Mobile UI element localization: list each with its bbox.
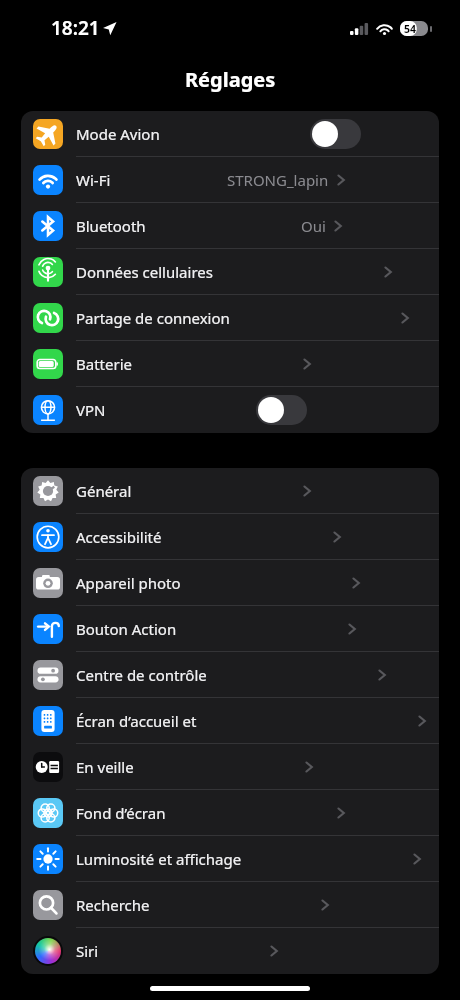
staticText: 54 <box>404 22 417 36</box>
button[interactable]: En veille <box>21 744 439 790</box>
staticText: Fond d’écran <box>76 803 166 823</box>
staticText: Siri <box>76 941 99 961</box>
button[interactable]: Données cellulaires <box>21 249 439 295</box>
button[interactable]: Bouton Action <box>21 606 439 652</box>
staticText: Accessibilité <box>76 527 162 547</box>
button[interactable]: Activer <box>256 395 307 425</box>
staticText: VPN <box>76 400 106 420</box>
button[interactable]: Centre de contrôle <box>21 652 439 698</box>
button[interactable]: Fond d’écran <box>21 790 439 836</box>
button[interactable]: Écran d’accueil et bibliothèque d’apps <box>21 698 439 744</box>
staticText: Oui <box>301 216 326 236</box>
button[interactable]: Siri <box>21 928 439 974</box>
staticText: Appareil photo <box>76 573 181 593</box>
button[interactable]: Recherche <box>21 882 439 928</box>
staticText: Données cellulaires <box>76 262 213 282</box>
staticText: Centre de contrôle <box>76 665 207 685</box>
button[interactable]: Activer <box>310 119 361 149</box>
staticText: Luminosité et affichage <box>76 849 242 869</box>
staticText: Général <box>76 481 132 501</box>
staticText: Mode Avion <box>76 124 160 144</box>
staticText: STRONG_lapin <box>227 170 329 190</box>
button[interactable]: Mode Avion <box>21 111 439 157</box>
button[interactable]: Wi-Fi <box>21 157 439 203</box>
button[interactable]: Luminosité et affichage <box>21 836 439 882</box>
staticText: Recherche <box>76 895 150 915</box>
button[interactable]: VPN <box>21 387 439 433</box>
staticText: Wi-Fi <box>76 170 111 190</box>
staticText: En veille <box>76 757 134 777</box>
button[interactable]: Général <box>21 468 439 514</box>
button[interactable]: Partage de connexion <box>21 295 439 341</box>
staticText: Partage de connexion <box>76 308 230 328</box>
staticText: Réglages <box>185 66 276 93</box>
button[interactable]: Appareil photo <box>21 560 439 606</box>
staticText: 18:21 <box>51 15 100 41</box>
button[interactable]: Batterie <box>21 341 439 387</box>
staticText: Écran d’accueil et bibliothèque d’apps <box>76 711 247 731</box>
staticText: Batterie <box>76 354 132 374</box>
button[interactable]: Bluetooth <box>21 203 439 249</box>
staticText: Bluetooth <box>76 216 146 236</box>
button[interactable]: Accessibilité <box>21 514 439 560</box>
staticText: Bouton Action <box>76 619 177 639</box>
